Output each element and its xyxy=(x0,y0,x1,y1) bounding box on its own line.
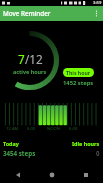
button[interactable]: Idle hours xyxy=(51,140,100,157)
staticText: This hour xyxy=(66,69,91,76)
staticText: 12 AM xyxy=(6,126,19,132)
staticText: 3454 steps xyxy=(3,149,36,157)
staticText: 7 xyxy=(18,51,25,67)
staticText: Today xyxy=(3,140,19,147)
staticText: Idle hours xyxy=(72,140,100,147)
button[interactable]: Back xyxy=(0,167,35,183)
staticText: Move Reminder xyxy=(3,9,51,18)
button[interactable]: Home xyxy=(35,167,69,183)
staticText: 0 xyxy=(96,149,100,157)
button[interactable]: More options xyxy=(90,7,103,20)
staticText: 1452 steps xyxy=(63,79,94,87)
staticText: 3:59 xyxy=(93,0,102,6)
staticText: /12 xyxy=(25,51,43,67)
staticText: 6:00 xyxy=(69,126,78,132)
staticText: 6:00 xyxy=(27,126,36,132)
button[interactable]: This hour xyxy=(63,68,94,87)
staticText: active hours xyxy=(13,68,47,75)
button[interactable]: Move Reminder xyxy=(0,6,103,21)
button[interactable]: Recents xyxy=(69,167,103,183)
button[interactable]: Today xyxy=(3,140,51,157)
staticText: NOON xyxy=(47,126,60,132)
